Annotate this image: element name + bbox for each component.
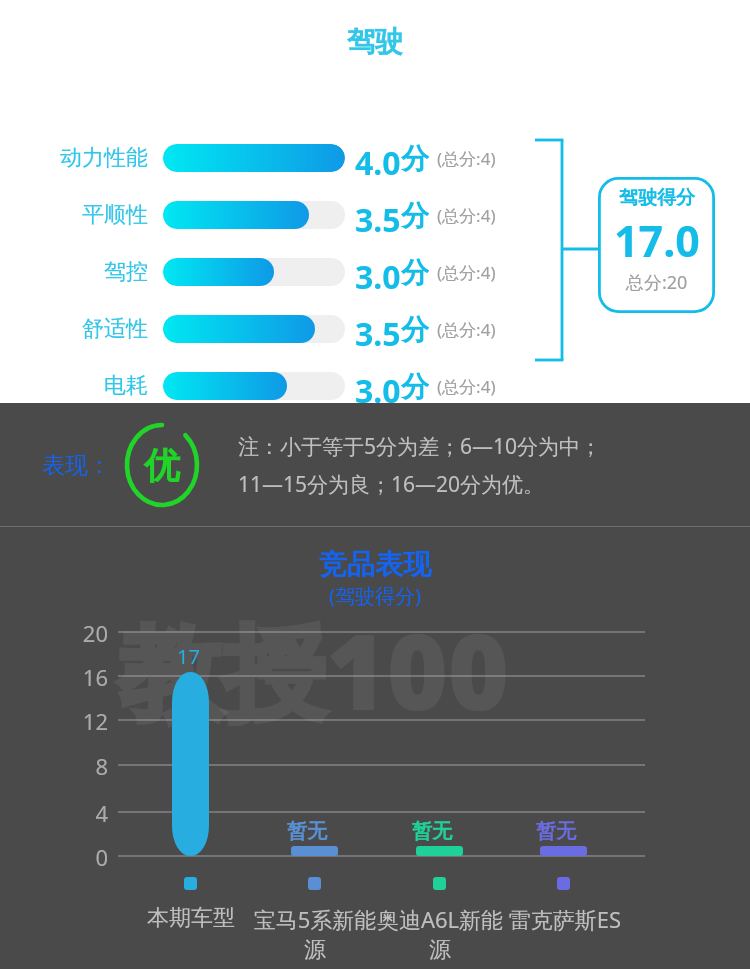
staticText: (总分:4) [437, 318, 496, 341]
staticText: 优 [144, 443, 180, 488]
staticText: (总分:4) [437, 204, 496, 227]
staticText: 分 [401, 141, 429, 174]
button[interactable]: 雷克萨斯ES [503, 904, 627, 934]
staticText: 暂无 [287, 819, 327, 844]
staticText: 3.0 [355, 255, 401, 289]
staticText: 平顺性 [36, 201, 148, 229]
staticText: 驾控 [36, 258, 148, 286]
staticText: 4.0 [355, 141, 401, 175]
staticText: 12 [76, 706, 108, 736]
staticText: (总分:4) [437, 375, 496, 398]
staticText: 动力性能 [36, 144, 148, 172]
staticText: (驾驶得分) [329, 582, 421, 609]
staticText: 17 [177, 643, 200, 670]
staticText: 分 [401, 198, 429, 231]
staticText: 舒适性 [36, 315, 148, 343]
staticText: 20 [76, 618, 108, 648]
staticText: 11—15分为良；16—20分为优。 [238, 470, 545, 499]
staticText: 3.5 [355, 198, 401, 232]
staticText: 3.0 [355, 369, 401, 403]
button[interactable]: 舒适性 [0, 312, 750, 346]
staticText: 暂无 [536, 819, 576, 844]
staticText: 3.5 [355, 312, 401, 346]
staticText: 暂无 [412, 819, 452, 844]
staticText: 竞品表现 [319, 547, 431, 582]
other: 优 rating [124, 422, 200, 508]
button[interactable]: 平顺性 [0, 198, 750, 232]
staticText: 4 [76, 798, 108, 828]
button[interactable]: 动力性能 [0, 141, 750, 175]
staticText: 分 [401, 369, 429, 402]
staticText: 驾驶 [347, 24, 403, 59]
staticText: 注：小于等于5分为差；6—10分为中； [238, 432, 602, 461]
button[interactable]: 电耗 [0, 369, 750, 403]
button[interactable]: 驾控 [0, 255, 750, 289]
staticText: (总分:4) [437, 147, 496, 170]
button[interactable]: 驾驶得分 [598, 177, 715, 313]
button[interactable]: 奥迪A6L新能源 [375, 904, 505, 964]
staticText: 驾驶得分 [619, 186, 695, 210]
staticText: 表现： [42, 451, 111, 480]
staticText: 教授100 [118, 599, 509, 741]
button[interactable]: 宝马5系新能源 [251, 904, 379, 964]
staticText: 16 [76, 662, 108, 692]
staticText: 分 [401, 255, 429, 288]
staticText: 0 [76, 842, 108, 872]
staticText: 17.0 [614, 211, 700, 270]
staticText: (总分:4) [437, 261, 496, 284]
button[interactable]: 本期车型 [140, 904, 242, 932]
staticText: 8 [76, 751, 108, 781]
staticText: 分 [401, 312, 429, 345]
staticText: 电耗 [36, 372, 148, 400]
staticText: 总分:20 [626, 270, 688, 295]
